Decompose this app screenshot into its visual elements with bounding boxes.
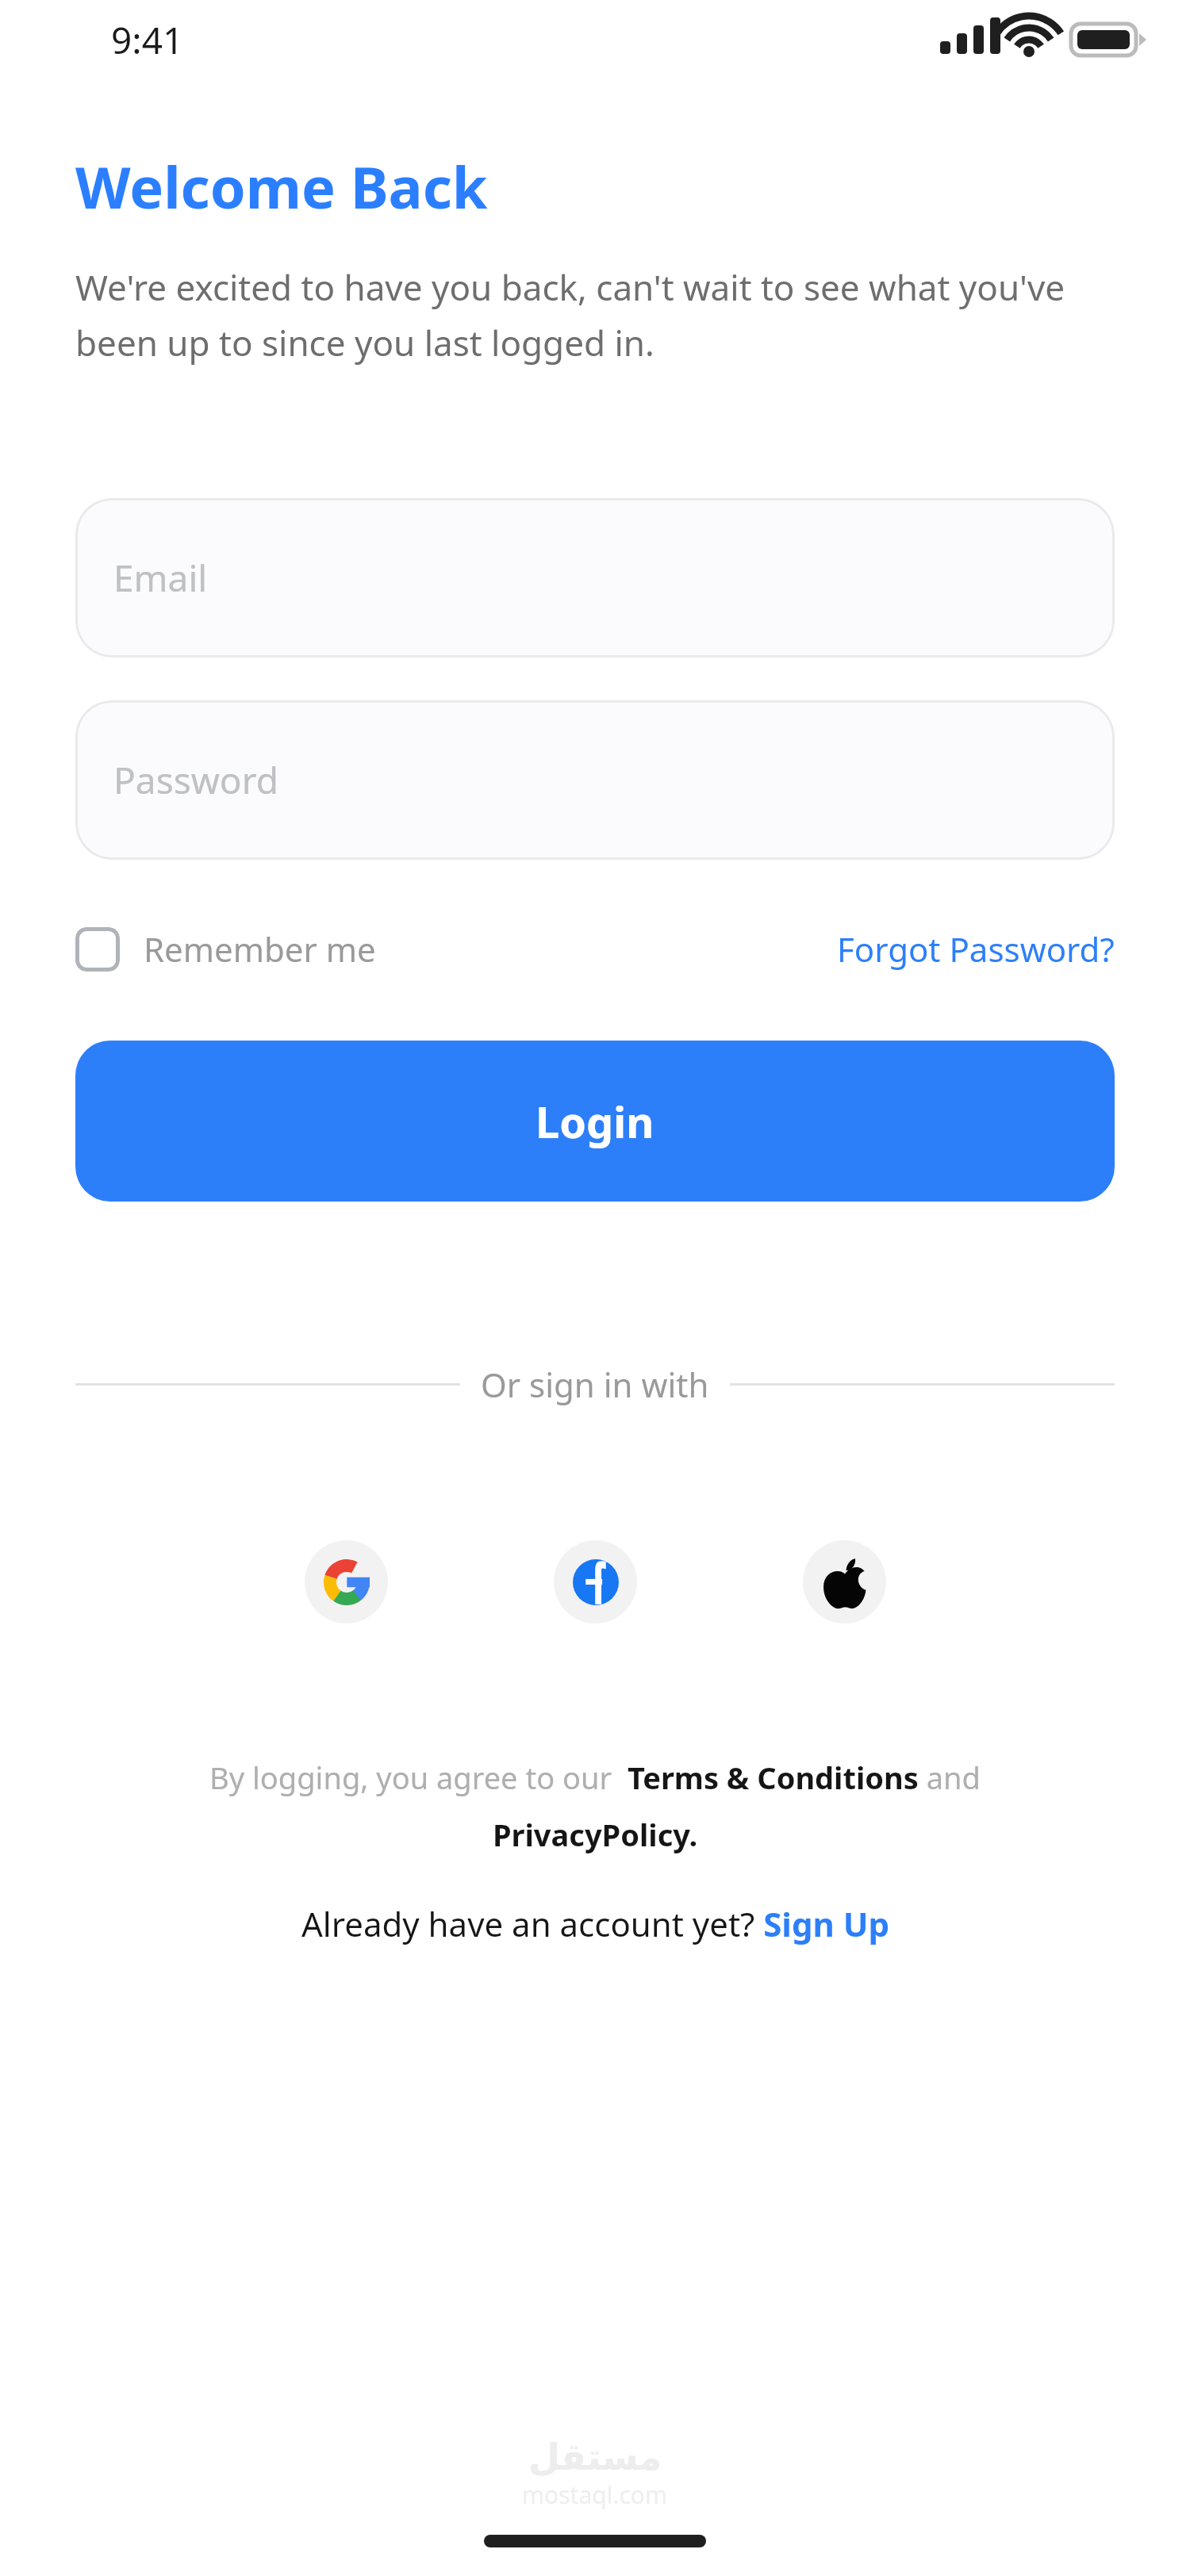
staticText: We're excited to have you back, can't wa… (75, 263, 1115, 366)
staticText: Login (535, 1092, 654, 1151)
staticText: Welcome Back (75, 148, 488, 225)
button[interactable]: By logging, you agree to our Terms & Con… (133, 1757, 1057, 1855)
staticText: mostaql.com (522, 2478, 668, 2511)
staticText: Remember me (144, 926, 376, 972)
staticText: Forgot Password? (837, 926, 1115, 972)
button[interactable]: Password (75, 700, 1115, 860)
button[interactable]: Sign in with Apple (803, 1540, 886, 1623)
button[interactable]: Login (75, 1041, 1115, 1202)
staticText: Password (113, 755, 279, 805)
button[interactable]: Email (75, 498, 1115, 657)
button[interactable]: Sign in with Google (305, 1540, 388, 1623)
button[interactable]: Remember me (75, 926, 382, 972)
button[interactable]: Sign in with Facebook (554, 1540, 637, 1623)
button[interactable]: Forgot Password? (837, 926, 1115, 972)
staticText: Or sign in with (481, 1362, 709, 1407)
staticText: 9:41 (111, 15, 184, 65)
staticText: Already have an account yet? Sign Up (301, 1901, 889, 1946)
staticText: Email (113, 553, 208, 603)
button[interactable]: Already have an account yet? Sign Up (0, 1901, 1190, 1946)
staticText: مستقل (528, 2436, 662, 2478)
